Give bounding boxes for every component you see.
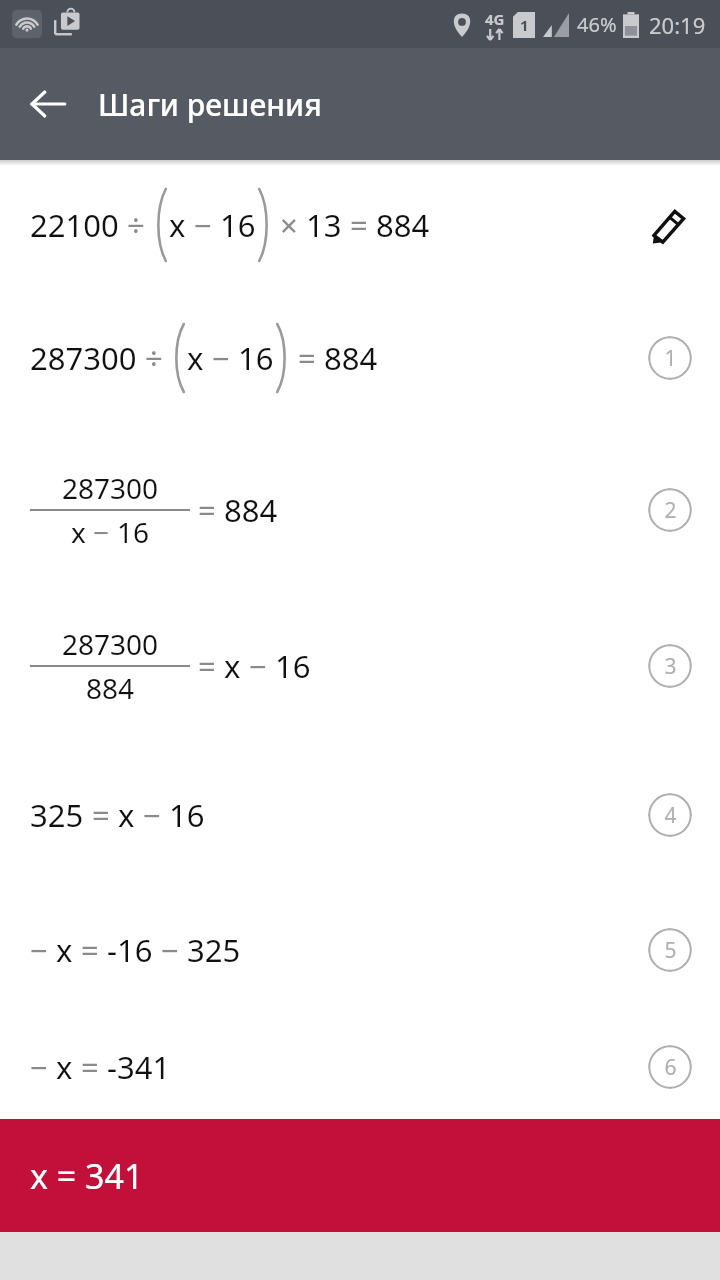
staticText: 16 [238,337,274,379]
staticText: 884 [224,489,278,531]
staticText: 46% [577,11,617,38]
staticText: = [190,645,224,687]
staticText: = [342,204,376,246]
staticText: 5 [664,936,677,965]
staticText: 3 [664,652,677,681]
button[interactable]: − [0,1015,720,1119]
button[interactable]: 287300 [0,587,720,745]
button[interactable]: 325 [0,745,720,885]
button[interactable]: 1 [648,336,692,380]
button[interactable]: 2 [648,488,692,532]
staticText: 16 [117,513,150,551]
button[interactable]: 6 [648,1045,692,1089]
staticText: x [71,513,86,551]
staticText: 13 [306,204,342,246]
button[interactable]: Back [20,76,76,132]
staticText: x [118,794,135,836]
staticText: 20:19 [649,10,706,40]
staticText: 16 [220,204,256,246]
staticText: 325 [187,929,241,971]
staticText: = [84,794,118,836]
button[interactable]: 287300 [0,284,720,432]
button[interactable]: 22100 [0,166,720,284]
staticText: = [290,337,324,379]
staticText: 6 [664,1053,677,1082]
staticText: 16 [169,794,205,836]
staticText: 4 [664,801,677,830]
staticText: − [86,513,117,551]
button[interactable]: 5 [648,928,692,972]
staticText: 1 [520,15,529,35]
button[interactable]: 287300 [0,432,720,587]
staticText: 1 [664,344,677,373]
staticText: -341 [107,1046,171,1088]
staticText: x [224,645,241,687]
staticText: 325 [30,794,84,836]
staticText: 4G [485,9,505,29]
staticText: − [30,929,56,971]
button[interactable]: Edit equation [646,201,694,249]
staticText: − [241,645,275,687]
staticText: -16 [107,929,153,971]
staticText: ÷ [119,204,153,246]
staticText: − [135,794,169,836]
staticText: 287300 [62,625,159,663]
staticText: x [56,1046,73,1088]
staticText: − [153,929,187,971]
staticText: x [56,929,73,971]
staticText: 22100 [30,204,119,246]
button[interactable]: 3 [648,644,692,688]
staticText: − [30,1046,56,1088]
button[interactable]: − [0,885,720,1015]
staticText: Шаги решения [98,84,322,125]
staticText: 287300 [62,469,159,507]
staticText: x = 341 [30,1153,144,1199]
staticText: − [186,204,220,246]
staticText: × [272,204,306,246]
staticText: − [204,337,238,379]
staticText: 16 [275,645,311,687]
staticText: 2 [664,496,677,525]
staticText: x [187,337,204,379]
staticText: = [190,489,224,531]
staticText: x [169,204,186,246]
staticText: ÷ [137,337,171,379]
staticText: = [73,1046,107,1088]
staticText: 884 [86,669,135,707]
button[interactable]: x = 341 [0,1119,720,1232]
staticText: 884 [376,204,430,246]
staticText: 884 [324,337,378,379]
button[interactable]: 4 [648,793,692,837]
staticText: = [73,929,107,971]
staticText: 287300 [30,337,137,379]
